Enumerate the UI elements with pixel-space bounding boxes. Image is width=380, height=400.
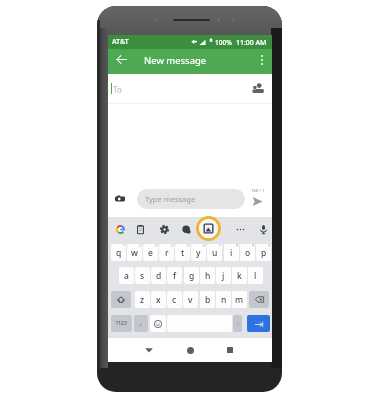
- staticText: 11:00 AM: [236, 38, 267, 47]
- button[interactable]: Emoji: [150, 315, 166, 332]
- button[interactable]: w: [127, 244, 142, 261]
- button[interactable]: p: [256, 244, 271, 261]
- staticText: a: [124, 270, 129, 282]
- staticText: q: [116, 247, 122, 259]
- button[interactable]: s: [135, 267, 150, 284]
- button[interactable]: Clipboard: [132, 221, 148, 237]
- staticText: 0: [268, 244, 270, 248]
- staticText: AT&T: [112, 37, 129, 47]
- button[interactable]: e: [143, 244, 158, 261]
- staticText: 5: [187, 244, 189, 248]
- staticText: 6: [203, 244, 205, 248]
- button[interactable]: Add contact: [249, 79, 267, 97]
- button[interactable]: k: [232, 267, 247, 284]
- button[interactable]: a: [119, 267, 134, 284]
- staticText: 160 / 1: [251, 188, 265, 194]
- button[interactable]: Attach: [112, 191, 128, 207]
- staticText: u: [212, 247, 218, 259]
- staticText: 9: [252, 244, 254, 248]
- staticText: Type message: [145, 194, 196, 204]
- button[interactable]: y: [191, 244, 206, 261]
- button[interactable]: Back: [142, 343, 156, 357]
- button[interactable]: g: [184, 267, 199, 284]
- staticText: ?123: [116, 320, 127, 327]
- staticText: 100%: [215, 38, 232, 47]
- button[interactable]: n: [216, 291, 231, 308]
- staticText: f: [173, 270, 177, 282]
- staticText: c: [172, 294, 177, 306]
- button[interactable]: More: [232, 221, 248, 237]
- staticText: ,: [140, 318, 142, 328]
- staticText: t: [181, 247, 185, 259]
- button[interactable]: Insert image: [196, 216, 221, 241]
- button[interactable]: Home: [183, 343, 197, 357]
- staticText: d: [156, 270, 162, 282]
- button[interactable]: i: [224, 244, 239, 261]
- button[interactable]: h: [200, 267, 215, 284]
- button[interactable]: Enter: [247, 315, 270, 332]
- button[interactable]: x: [151, 291, 166, 308]
- button[interactable]: o: [240, 244, 255, 261]
- button[interactable]: c: [167, 291, 182, 308]
- staticText: 3: [155, 244, 157, 248]
- staticText: o: [245, 247, 251, 259]
- button[interactable]: Settings: [156, 221, 172, 237]
- staticText: p: [261, 247, 267, 259]
- button[interactable]: Recents: [223, 343, 237, 357]
- button[interactable]: Voice input: [255, 221, 271, 237]
- button[interactable]: Back: [113, 51, 130, 68]
- button[interactable]: To: [108, 74, 272, 104]
- staticText: b: [205, 294, 211, 306]
- staticText: w: [131, 247, 138, 259]
- staticText: n: [221, 294, 227, 306]
- button[interactable]: z: [135, 291, 150, 308]
- staticText: v: [188, 294, 193, 306]
- button[interactable]: b: [200, 291, 215, 308]
- button[interactable]: m: [232, 291, 247, 308]
- staticText: r: [165, 247, 169, 259]
- button[interactable]: Type message: [137, 189, 245, 209]
- staticText: l: [254, 270, 257, 282]
- staticText: z: [140, 294, 145, 306]
- button[interactable]: f: [167, 267, 182, 284]
- staticText: x: [156, 294, 161, 306]
- staticText: 8: [236, 244, 238, 248]
- staticText: m: [235, 294, 244, 306]
- button[interactable]: Shift: [111, 291, 131, 308]
- staticText: To: [113, 84, 122, 95]
- staticText: e: [148, 247, 153, 259]
- button[interactable]: Send: [249, 193, 265, 209]
- button[interactable]: r: [159, 244, 174, 261]
- button[interactable]: Stickers: [178, 221, 194, 237]
- button[interactable]: t: [175, 244, 190, 261]
- staticText: g: [189, 270, 195, 282]
- staticText: 7: [219, 244, 221, 248]
- button[interactable]: ?123: [111, 315, 132, 332]
- staticText: 4: [171, 244, 173, 248]
- button[interactable]: u: [207, 244, 222, 261]
- other: Wi-Fi calling: [191, 39, 197, 45]
- button[interactable]: More options: [253, 51, 270, 68]
- staticText: j: [222, 270, 225, 282]
- staticText: y: [196, 247, 201, 259]
- button[interactable]: ,: [134, 315, 148, 332]
- staticText: New message: [144, 54, 207, 67]
- staticText: 2: [139, 244, 141, 248]
- button[interactable]: d: [151, 267, 166, 284]
- staticText: s: [140, 270, 145, 282]
- button[interactable]: l: [248, 267, 263, 284]
- staticText: k: [237, 270, 242, 282]
- button[interactable]: .: [233, 315, 242, 332]
- staticText: .: [237, 318, 239, 328]
- button[interactable]: j: [216, 267, 231, 284]
- staticText: 1: [123, 244, 125, 248]
- staticText: i: [230, 247, 233, 259]
- staticText: h: [205, 270, 211, 282]
- button[interactable]: Backspace: [249, 291, 269, 308]
- button[interactable]: q: [111, 244, 126, 261]
- button[interactable]: v: [183, 291, 198, 308]
- button[interactable]: Google search: [112, 221, 128, 237]
